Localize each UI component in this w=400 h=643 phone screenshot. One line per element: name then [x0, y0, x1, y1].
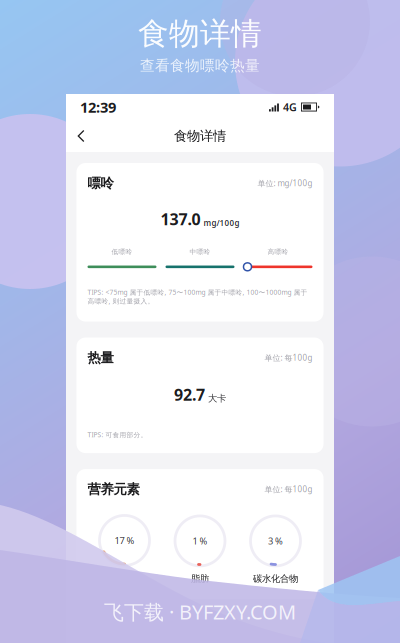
staticText: 92.7: [174, 384, 205, 405]
button[interactable]: Back: [66, 120, 96, 151]
staticText: 137.0: [160, 208, 200, 230]
staticText: 飞下载 · BYFZXY.COM: [104, 598, 296, 625]
staticText: 中嘌呤: [189, 248, 210, 256]
staticText: 1 %: [192, 535, 207, 547]
staticText: 热量: [87, 350, 113, 366]
staticText: 嘌呤: [87, 175, 113, 191]
staticText: 低嘌呤: [111, 248, 132, 256]
staticText: 食物详情: [174, 128, 226, 144]
staticText: 单位: 每100g: [264, 484, 312, 494]
staticText: 4G: [283, 100, 297, 114]
staticText: 脂肪: [191, 573, 209, 584]
staticText: 碳水化合物: [253, 573, 298, 584]
staticText: 单位: 每100g: [264, 352, 312, 363]
staticText: mg/100g: [203, 217, 239, 228]
staticText: 大卡: [208, 393, 226, 404]
staticText: 12:39: [80, 97, 116, 117]
staticText: TIPS: <75mg 属于低嘌呤, 75〜100mg 属于中嘌呤, 100〜1…: [87, 288, 307, 305]
staticText: 查看食物嘌呤热量: [140, 57, 260, 75]
staticText: 食物详情: [138, 15, 262, 53]
staticText: TIPS: 可食用部分。: [87, 430, 147, 439]
staticText: 营养元素: [87, 481, 139, 497]
staticText: 高嘌呤: [267, 248, 288, 256]
staticText: 单位: mg/100g: [257, 178, 312, 188]
staticText: 3 %: [268, 535, 283, 547]
staticText: 17 %: [114, 534, 134, 547]
